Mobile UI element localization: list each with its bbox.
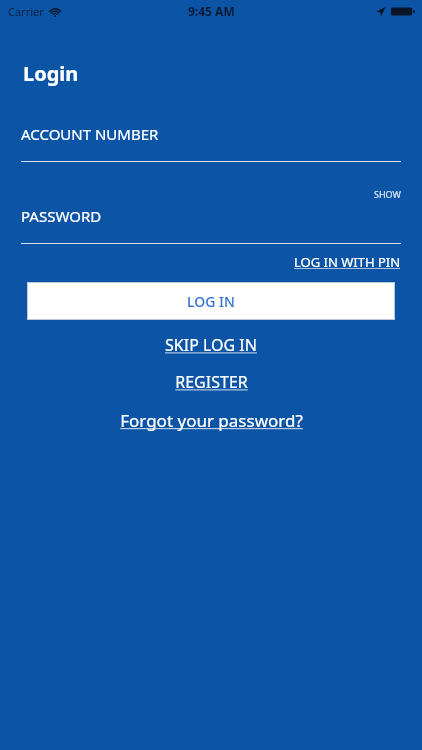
button[interactable]: Show password	[374, 188, 401, 200]
staticText: Login	[23, 60, 79, 87]
staticText: REGISTER	[175, 371, 248, 393]
staticText: ACCOUNT NUMBER	[21, 124, 159, 144]
staticText: 9:45 AM	[188, 3, 235, 19]
staticText: LOG IN WITH PIN	[294, 253, 401, 271]
staticText: SKIP LOG IN	[165, 334, 257, 356]
staticText: LOG IN	[187, 292, 235, 311]
staticText: PASSWORD	[21, 206, 102, 226]
button[interactable]: ACCOUNT NUMBER	[0, 124, 422, 162]
button[interactable]: LOG IN WITH PIN	[294, 253, 401, 271]
button[interactable]: Forgot your password?	[114, 408, 309, 433]
button[interactable]: SKIP LOG IN	[159, 333, 263, 357]
button[interactable]: PASSWORD	[0, 206, 422, 244]
button[interactable]: REGISTER	[169, 370, 254, 394]
button[interactable]: LOG IN	[27, 282, 395, 320]
staticText: SHOW	[374, 188, 401, 200]
staticText: Forgot your password?	[120, 409, 303, 432]
staticText: Carrier	[8, 4, 44, 19]
